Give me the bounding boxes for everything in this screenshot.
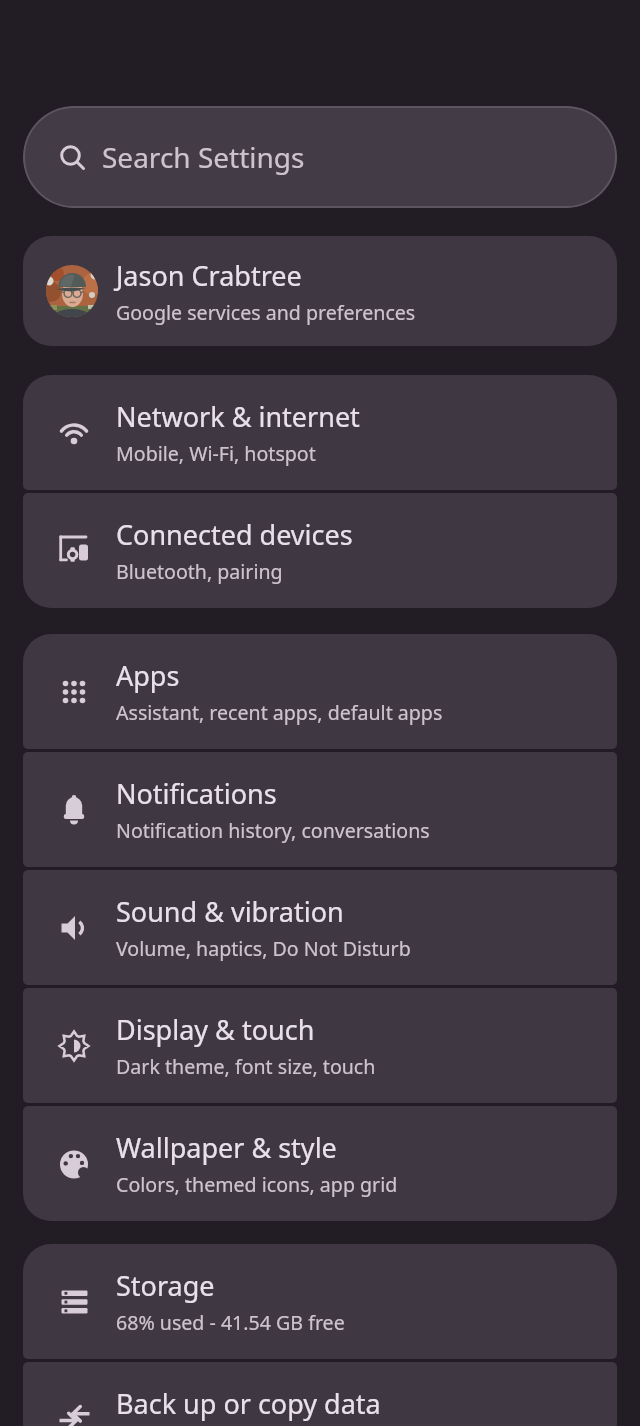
button[interactable]: Notifications (23, 752, 617, 867)
button[interactable]: Connected devices (23, 493, 617, 608)
staticText: Volume, haptics, Do Not Disturb (116, 935, 411, 962)
button[interactable]: Storage (23, 1244, 617, 1359)
staticText: Storage (116, 1267, 215, 1304)
staticText: Display & touch (116, 1011, 315, 1048)
staticText: Connected devices (116, 516, 353, 553)
staticText: Wallpaper & style (116, 1129, 337, 1166)
staticText: Bluetooth, pairing (116, 558, 283, 585)
button[interactable]: Wallpaper & style (23, 1106, 617, 1221)
staticText: Notifications (116, 775, 277, 812)
button[interactable]: Sound & vibration (23, 870, 617, 985)
staticText: Assistant, recent apps, default apps (116, 699, 443, 726)
staticText: Jason Crabtree (116, 257, 302, 294)
staticText: 68% used - 41.54 GB free (116, 1309, 345, 1336)
staticText: Apps (116, 657, 180, 694)
staticText: Back up or copy data (116, 1385, 381, 1422)
button[interactable]: Back up or copy data (23, 1362, 617, 1426)
button[interactable]: Display & touch (23, 988, 617, 1103)
staticText: Mobile, Wi-Fi, hotspot (116, 440, 316, 467)
button[interactable]: Apps (23, 634, 617, 749)
staticText: Colors, themed icons, app grid (116, 1171, 398, 1198)
staticText: Network & internet (116, 398, 360, 435)
button[interactable]: Search Settings (23, 106, 617, 208)
staticText: Sound & vibration (116, 893, 344, 930)
staticText: Notification history, conversations (116, 817, 430, 844)
staticText: Dark theme, font size, touch (116, 1053, 376, 1080)
button[interactable]: Network & internet (23, 375, 617, 490)
staticText: Search Settings (102, 138, 305, 176)
staticText: Google services and preferences (116, 299, 416, 326)
button[interactable]: Jason Crabtree (23, 236, 617, 346)
